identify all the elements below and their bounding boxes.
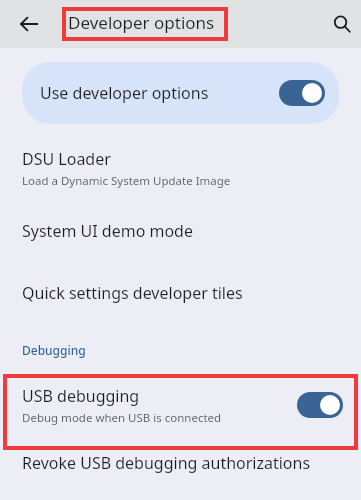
staticText: Quick settings developer tiles <box>22 282 243 304</box>
staticText: DSU Loader <box>22 148 111 170</box>
button[interactable]: Use developer options toggle <box>279 80 325 106</box>
staticText: Debugging <box>22 342 86 358</box>
button[interactable]: Search <box>324 6 360 42</box>
staticText: Load a Dynamic System Update Image <box>22 173 231 189</box>
staticText: Developer options <box>68 11 215 34</box>
button[interactable]: USB debugging toggle <box>297 392 343 418</box>
button[interactable]: Back <box>11 6 47 42</box>
button[interactable]: DSU Loader <box>0 144 361 193</box>
button[interactable]: System UI demo mode <box>0 215 361 247</box>
button[interactable]: Developer options <box>68 11 215 34</box>
staticText: Debug mode when USB is connected <box>22 410 222 426</box>
button[interactable]: Revoke USB debugging authorizations <box>0 447 361 479</box>
staticText: Revoke USB debugging authorizations <box>22 452 311 474</box>
staticText: System UI demo mode <box>22 220 193 242</box>
button[interactable]: USB debugging <box>0 376 361 434</box>
button[interactable]: Quick settings developer tiles <box>0 277 361 309</box>
staticText: USB debugging <box>22 385 140 407</box>
staticText: Use developer options <box>40 82 279 104</box>
button[interactable]: Use developer options <box>22 62 339 124</box>
